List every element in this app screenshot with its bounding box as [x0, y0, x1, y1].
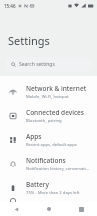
button[interactable]: Search settings [5, 57, 92, 72]
staticText: Recent apps, default apps [26, 142, 77, 148]
staticText: Connected devices [26, 108, 85, 117]
button[interactable]: Connected devices [0, 104, 97, 128]
button[interactable]: Battery [0, 176, 97, 200]
staticText: 15:46 [4, 3, 16, 9]
button[interactable]: Home [33, 202, 65, 216]
staticText: Network & internet [26, 84, 87, 93]
button[interactable]: Recent apps [65, 202, 97, 216]
staticText: Notifications [26, 156, 66, 165]
button[interactable]: Apps [0, 128, 97, 152]
button[interactable]: Notifications [0, 152, 97, 176]
button[interactable]: Storage [0, 200, 97, 202]
staticText: Settings [8, 33, 50, 48]
staticText: Notification history, conversations [26, 166, 91, 172]
staticText: Mobile, Wi-Fi, hotspot [26, 94, 69, 100]
button[interactable]: Network & internet [0, 80, 97, 104]
staticText: Battery [26, 180, 49, 189]
staticText: Apps [26, 132, 42, 141]
staticText: 75% - More than 2 days left [26, 190, 80, 196]
staticText: Bluetooth, pairing [26, 118, 62, 124]
staticText: Search settings [19, 61, 55, 68]
button[interactable]: Back [0, 202, 33, 216]
